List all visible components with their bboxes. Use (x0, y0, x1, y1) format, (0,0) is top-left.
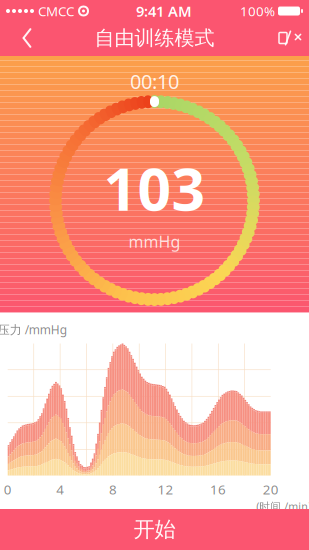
staticText: 开始 (133, 516, 175, 543)
staticText: 12 (157, 480, 173, 498)
staticText: 自由训练模式 (94, 26, 214, 50)
staticText: 100% (240, 2, 275, 20)
staticText: 0 (4, 480, 12, 498)
button[interactable]: 开始 (0, 509, 309, 550)
button[interactable]: Mute (263, 21, 309, 55)
staticText: 00:10 (130, 68, 179, 95)
staticText: mmHg (128, 231, 180, 252)
staticText: 8 (109, 480, 117, 498)
staticText: 9:41 AM (136, 1, 192, 21)
staticText: 压力 /mmHg (0, 322, 67, 337)
staticText: (时间 /min) (256, 499, 309, 513)
staticText: 103 (103, 149, 205, 227)
staticText: CMCC (38, 2, 74, 20)
staticText: 20 (263, 480, 279, 498)
staticText: 4 (56, 480, 64, 498)
staticText: 16 (210, 480, 226, 498)
button[interactable]: Back (0, 21, 46, 55)
